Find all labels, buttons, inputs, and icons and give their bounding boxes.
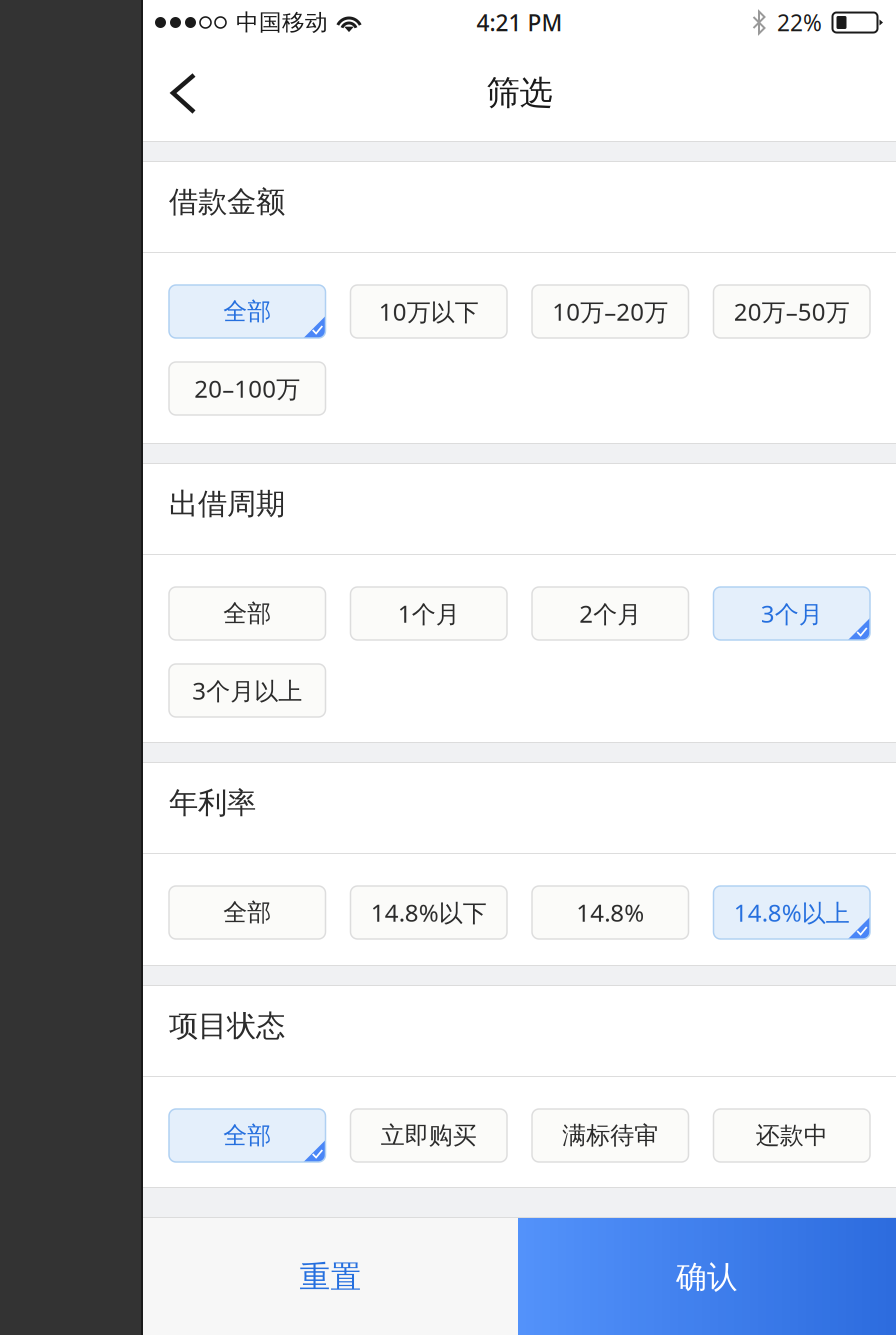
staticText: 4:21 PM [476,7,562,37]
button[interactable]: 全部 [169,285,325,338]
staticText: 全部 [223,898,271,927]
button[interactable]: 全部 [169,886,325,939]
staticText: 14.8%以下 [371,897,487,928]
button[interactable]: 20万–50万 [713,285,870,338]
staticText: 2个月 [579,598,641,629]
staticText: 20–100万 [194,373,300,404]
staticText: 筛选 [486,72,552,113]
button[interactable]: 14.8% [532,886,688,939]
button[interactable]: 满标待审 [532,1109,688,1162]
button[interactable]: 全部 [169,587,325,640]
staticText: 1个月 [398,598,460,629]
staticText: 10万以下 [379,296,479,327]
button[interactable]: 重置 [143,1218,518,1335]
button[interactable]: 1个月 [350,587,507,640]
button[interactable]: 14.8%以下 [350,886,507,939]
staticText: 14.8% [576,897,644,928]
staticText: 项目状态 [169,1008,285,1044]
staticText: 年利率 [169,785,256,821]
staticText: 全部 [223,599,271,628]
staticText: 3个月 [761,598,823,629]
staticText: 立即购买 [381,1121,477,1150]
staticText: 满标待审 [562,1121,658,1150]
button[interactable]: 3个月 [713,587,870,640]
staticText: 重置 [299,1258,361,1296]
staticText: 全部 [223,297,271,326]
button[interactable]: 14.8%以上 [713,886,870,939]
staticText: 中国移动 [236,9,328,36]
staticText: 20万–50万 [734,296,850,327]
button[interactable]: 3个月以上 [169,664,325,717]
button[interactable]: 2个月 [532,587,688,640]
button[interactable]: 全部 [169,1109,325,1162]
staticText: 出借周期 [169,486,285,522]
button[interactable]: 10万–20万 [532,285,688,338]
staticText: 全部 [223,1121,271,1150]
staticText: 22% [777,7,822,37]
staticText: 确认 [676,1258,738,1296]
button[interactable]: 确认 [518,1218,896,1335]
button[interactable]: 还款中 [713,1109,870,1162]
button[interactable]: 20–100万 [169,362,325,415]
staticText: 还款中 [756,1121,828,1150]
button[interactable]: 返回 [143,45,219,141]
button[interactable]: 10万以下 [350,285,507,338]
staticText: 3个月以上 [192,675,302,706]
button[interactable]: 立即购买 [350,1109,507,1162]
staticText: 借款金额 [169,184,285,220]
staticText: 14.8%以上 [734,897,850,928]
staticText: 10万–20万 [552,296,668,327]
